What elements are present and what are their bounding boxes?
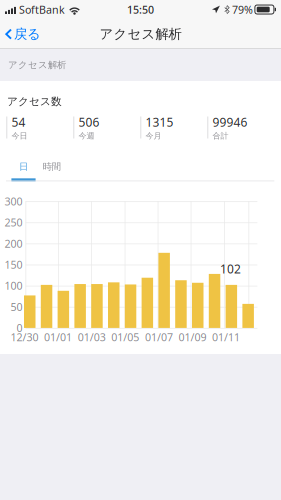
staticText: 200 bbox=[4, 236, 22, 251]
staticText: アクセス解析 bbox=[8, 59, 66, 71]
staticText: 時間 bbox=[43, 161, 61, 172]
staticText: 12/30 bbox=[10, 330, 38, 344]
staticText: 01/07 bbox=[145, 330, 173, 344]
staticText: 100 bbox=[4, 279, 22, 293]
staticText: 今日 bbox=[11, 131, 27, 141]
staticText: 今月 bbox=[145, 131, 161, 141]
staticText: 1315 bbox=[145, 114, 173, 130]
staticText: 01/05 bbox=[111, 330, 139, 344]
staticText: 日 bbox=[19, 161, 28, 172]
staticText: 今週 bbox=[78, 131, 94, 141]
staticText: 0 bbox=[16, 321, 22, 335]
staticText: アクセス解析 bbox=[99, 26, 181, 42]
button[interactable]: 時間 bbox=[40, 159, 68, 181]
staticText: 150 bbox=[4, 257, 22, 272]
button[interactable]: 日 bbox=[11, 159, 40, 181]
staticText: 合計 bbox=[212, 131, 228, 141]
staticText: 戻る bbox=[14, 26, 41, 42]
staticText: 01/03 bbox=[78, 330, 106, 344]
staticText: 01/09 bbox=[178, 330, 206, 344]
staticText: 01/11 bbox=[212, 330, 240, 344]
staticText: 300 bbox=[4, 194, 22, 208]
staticText: 99946 bbox=[212, 114, 247, 130]
staticText: 102 bbox=[220, 261, 241, 277]
staticText: SoftBank bbox=[19, 2, 65, 17]
staticText: 506 bbox=[78, 114, 99, 130]
staticText: 01/01 bbox=[44, 330, 72, 344]
staticText: 79% bbox=[232, 2, 253, 17]
button[interactable]: 戻る bbox=[0, 21, 49, 47]
staticText: 250 bbox=[4, 215, 22, 229]
staticText: 54 bbox=[11, 114, 25, 130]
staticText: アクセス数 bbox=[7, 95, 62, 108]
staticText: 15:50 bbox=[127, 2, 154, 17]
staticText: 50 bbox=[10, 300, 22, 314]
